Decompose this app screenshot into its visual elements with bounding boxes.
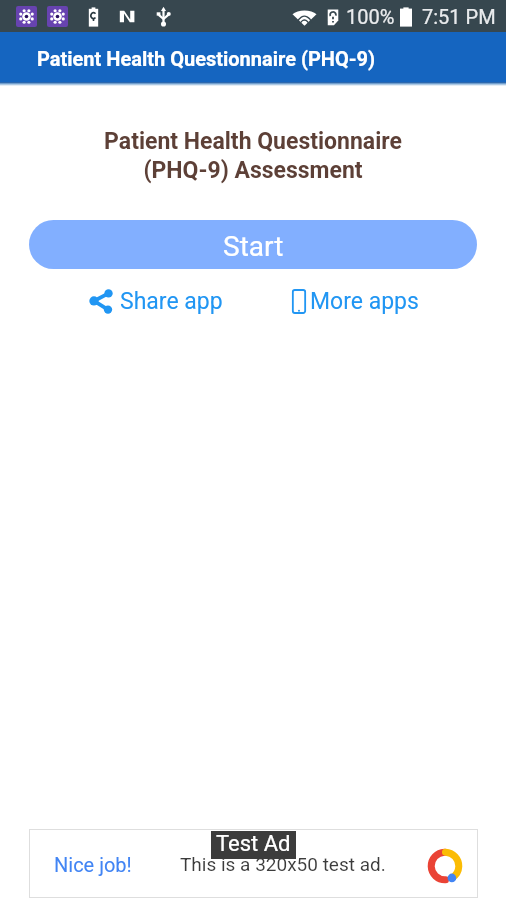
staticText: Patient Health Questionnaire (PHQ-9) — [37, 47, 376, 70]
staticText: Nice job! — [54, 853, 132, 876]
staticText: More apps — [310, 288, 419, 315]
button[interactable]: Start — [29, 220, 477, 269]
button[interactable]: Share app — [88, 288, 223, 315]
staticText: Share app — [120, 288, 223, 315]
staticText: Patient Health Questionnaire (PHQ-9) Ass… — [0, 128, 506, 184]
staticText: This is a 320x50 test ad. — [180, 853, 386, 875]
button[interactable]: More apps — [292, 288, 419, 315]
staticText: 100% — [346, 5, 395, 28]
staticText: Start — [223, 230, 284, 263]
button[interactable]: Nice job! — [30, 830, 477, 897]
staticText: 7:51 PM — [422, 5, 496, 28]
staticText: Test Ad — [216, 831, 291, 857]
